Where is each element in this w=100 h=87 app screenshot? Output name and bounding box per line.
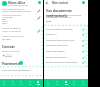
staticText: Adresse e-mail de contact xyxy=(2,35,24,37)
staticText: Numero de telephone xyxy=(2,27,21,29)
button[interactable]: Onglet 1 xyxy=(44,79,53,87)
staticText: 12 rue des xyxy=(2,16,13,19)
button[interactable]: Onglet 2 xyxy=(53,79,62,87)
staticText: +33 6 12 34 56 78 xyxy=(2,30,21,33)
staticText: Facture annuelle 2024 xyxy=(46,56,67,59)
button[interactable]: Recapitulatif de vos prelevements xyxy=(44,60,88,65)
staticText: Attestation d'assurance xyxy=(46,44,68,47)
button[interactable]: Bulletin de situation xyxy=(44,49,88,54)
button[interactable]: Modifier xyxy=(37,16,41,20)
button[interactable]: Retour xyxy=(45,1,49,5)
staticText: Marie-Alice xyxy=(8,1,26,5)
button[interactable]: Avenant n 1 xyxy=(44,32,88,37)
staticText: telecharger vos documents ici. xyxy=(46,16,72,18)
button[interactable]: Onglet 4 xyxy=(70,79,79,87)
button[interactable]: Notifications xyxy=(38,1,41,4)
staticText: Vos documents contractuels xyxy=(46,8,90,18)
staticText: Mon contrat xyxy=(52,1,68,5)
staticText: Votre prochain prelevement xyxy=(2,69,31,72)
staticText: Avenant n 1 xyxy=(46,33,58,36)
staticText: Ma mail xyxy=(2,38,11,41)
staticText: marie-alice.d@mail.com xyxy=(8,4,29,6)
staticText: Marie-Alice Dupont-Martin xyxy=(2,10,31,13)
button[interactable]: Onglet 4 xyxy=(26,79,35,87)
staticText: En cours xyxy=(5,55,12,57)
staticText: Bulletin de situation xyxy=(46,50,65,53)
button[interactable]: Facture annuelle 2024 xyxy=(44,55,88,60)
staticText: Contrat residence principale xyxy=(46,28,73,31)
button[interactable]: Onglet 1 xyxy=(0,79,9,87)
button[interactable]: Avatar xyxy=(2,1,7,6)
button[interactable]: Conditions generales de vente xyxy=(44,38,88,43)
button[interactable]: Notifications xyxy=(82,1,85,4)
button[interactable]: Attestation d'assurance xyxy=(44,43,88,48)
button[interactable]: En cours xyxy=(2,54,12,57)
button[interactable]: Onglet 3 xyxy=(62,79,71,87)
button[interactable]: Onglet 3 xyxy=(17,79,26,87)
staticText: Informations personnelles xyxy=(2,8,25,10)
button[interactable]: Onglet 2 xyxy=(9,79,18,87)
staticText: Paiements xyxy=(2,61,20,65)
button[interactable]: Modifier xyxy=(37,29,41,33)
staticText: Paris xyxy=(2,22,8,25)
button[interactable] xyxy=(0,0,43,7)
staticText: Conditions generales de vente xyxy=(46,39,75,42)
button[interactable]: Contrat residence principale xyxy=(44,27,88,32)
staticText: Vous avez la possibilite de consulter et… xyxy=(46,14,81,16)
staticText: Adresse de facturation xyxy=(2,14,22,16)
staticText: Recapitulatif de vos prelevements xyxy=(46,61,78,64)
button[interactable]: Onglet 5 xyxy=(34,79,43,87)
staticText: Lilas xyxy=(2,18,7,21)
button[interactable]: Modifier xyxy=(37,9,41,13)
staticText: 2024 xyxy=(46,20,52,23)
staticText: Contrat xyxy=(2,44,15,48)
button[interactable]: Onglet 5 xyxy=(79,79,88,87)
staticText: 75011 xyxy=(2,20,9,23)
staticText: Reference du contrat xyxy=(2,50,20,52)
